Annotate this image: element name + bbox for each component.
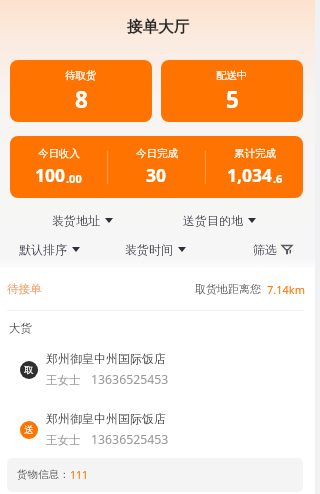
staticText: 取货地距离您 — [195, 282, 261, 296]
button[interactable]: 筛选 — [210, 235, 315, 264]
staticText: 大货 — [9, 321, 32, 335]
staticText: 8 — [75, 84, 88, 115]
staticText: 13636525453 — [91, 431, 169, 448]
staticText: 郑州御皇中州国际饭店 — [46, 411, 166, 426]
staticText: 1,034 — [227, 163, 273, 187]
staticText: 7.14km — [267, 282, 305, 297]
staticText: 5 — [226, 84, 239, 115]
staticText: 郑州御皇中州国际饭店 — [46, 351, 166, 366]
staticText: 默认排序 — [19, 242, 67, 257]
staticText: 配送中 — [216, 69, 248, 82]
button[interactable]: 装货地址 — [0, 206, 157, 235]
staticText: 今日完成 — [136, 147, 178, 160]
button[interactable]: 待取货 — [10, 60, 152, 122]
staticText: 今日收入 — [38, 147, 80, 160]
button[interactable]: 取 — [20, 351, 303, 388]
staticText: 取 — [24, 364, 34, 376]
staticText: .6 — [273, 171, 283, 186]
button[interactable]: 送 — [20, 411, 303, 448]
staticText: 待接单 — [7, 282, 42, 296]
staticText: 111 — [70, 468, 89, 482]
button[interactable]: 货物信息： — [7, 458, 303, 492]
button[interactable]: 配送中 — [161, 60, 303, 122]
staticText: 王女士 — [46, 373, 81, 387]
button[interactable]: 装货时间 — [105, 235, 210, 264]
staticText: 王女士 — [46, 433, 81, 447]
staticText: 累计完成 — [234, 147, 276, 160]
staticText: .00 — [66, 171, 82, 186]
staticText: 13636525453 — [91, 371, 169, 388]
staticText: 装货地址 — [52, 213, 100, 228]
staticText: 30 — [146, 163, 167, 187]
button[interactable]: 默认排序 — [0, 235, 105, 264]
staticText: 待取货 — [65, 69, 97, 82]
staticText: 筛选 — [253, 242, 277, 257]
staticText: 送 — [24, 424, 34, 436]
button[interactable]: 送货目的地 — [157, 206, 315, 235]
staticText: 送货目的地 — [183, 213, 243, 228]
staticText: 货物信息： — [17, 468, 70, 481]
staticText: 装货时间 — [125, 242, 173, 257]
staticText: 接单大厅 — [127, 17, 189, 37]
staticText: 100 — [35, 163, 66, 187]
